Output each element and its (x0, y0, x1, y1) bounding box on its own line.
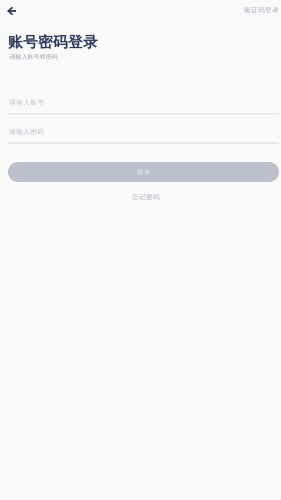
staticText: 账号密码登录 (8, 33, 98, 51)
button[interactable]: 忘记密码 (10, 191, 281, 203)
staticText: 登录 (136, 168, 150, 176)
staticText: 请输入账号 (9, 98, 44, 106)
staticText: 忘记密码 (132, 193, 160, 201)
button[interactable]: 请输入密码 (8, 126, 279, 148)
button[interactable]: 请输入账号 (8, 97, 279, 119)
staticText: 请输入账号和密码 (9, 53, 57, 61)
button[interactable]: 登录 (8, 162, 279, 182)
staticText: 请输入密码 (9, 127, 44, 136)
staticText: 验证码登录 (244, 6, 279, 14)
button[interactable]: 验证码登录 (238, 2, 281, 18)
button[interactable]: 返回 (0, 0, 22, 22)
